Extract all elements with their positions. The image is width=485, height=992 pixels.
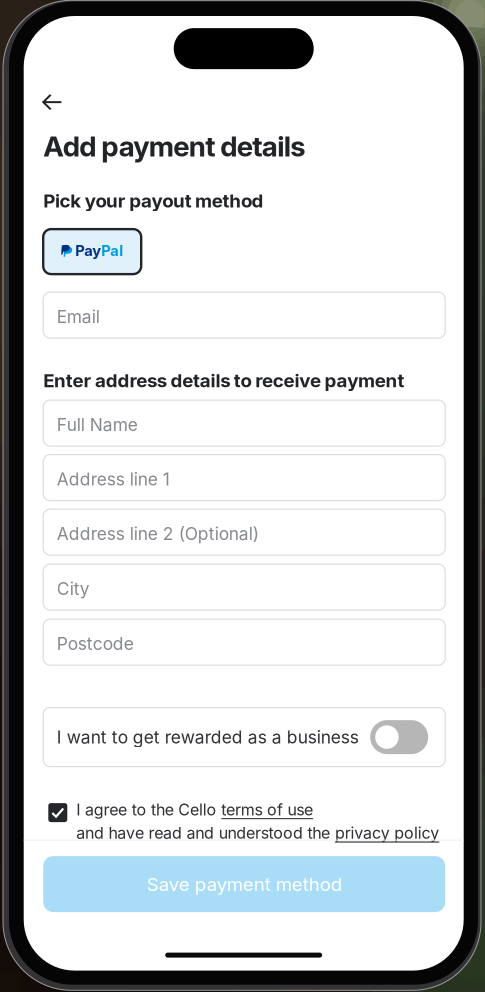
staticText: Add payment details	[43, 129, 305, 163]
staticText: Postcode	[57, 633, 134, 654]
staticText: Address line 1	[57, 469, 170, 490]
staticText: terms of use	[221, 800, 313, 819]
staticText: Save payment method	[147, 873, 342, 895]
staticText: Pal	[101, 242, 123, 259]
staticText: I agree to the Cello	[76, 800, 221, 819]
staticText: Pick your payout method	[43, 189, 264, 212]
button[interactable]: Address line 1	[43, 455, 445, 501]
staticText: Enter address details to receive payment	[43, 369, 404, 392]
staticText: Address line 2 (Optional)	[57, 523, 259, 544]
button[interactable]: Full Name	[43, 400, 445, 446]
staticText: City	[57, 578, 90, 599]
staticText: Full Name	[57, 414, 138, 435]
button[interactable]: Save payment method	[43, 856, 445, 912]
button[interactable]: PayPal	[43, 229, 141, 274]
button[interactable]: I want to get rewarded as a business	[43, 708, 445, 767]
button[interactable]: privacy policy	[335, 823, 439, 843]
button[interactable]: City	[43, 564, 445, 610]
staticText: Email	[57, 306, 100, 327]
staticText: I want to get rewarded as a business	[57, 727, 359, 748]
button[interactable]: Postcode	[43, 619, 445, 665]
button[interactable]: Email	[43, 292, 445, 338]
staticText: privacy policy	[335, 823, 439, 843]
staticText: Pay	[75, 242, 101, 259]
button[interactable]: terms of use	[221, 800, 313, 819]
staticText: and have read and understood the	[76, 823, 335, 843]
button[interactable]: I agree to the Cello terms of use	[48, 803, 67, 822]
button[interactable]: Back	[42, 84, 82, 120]
button[interactable]: Address line 2 (Optional)	[43, 509, 445, 555]
